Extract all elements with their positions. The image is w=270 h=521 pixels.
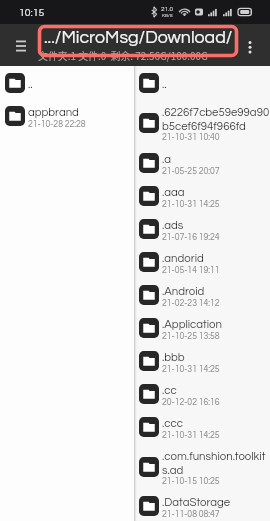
staticText: .cc [162,385,177,397]
staticText: 21-10-31 14:25 [162,200,220,209]
staticText: 21-10-31 14:25 [162,365,220,374]
button[interactable]: appbrand [0,99,133,132]
button[interactable]: .Android [137,278,270,311]
button[interactable]: .Application [137,311,270,344]
staticText: 21-10-31 10:40 [162,133,220,142]
staticText: appbrand [28,107,79,119]
button[interactable]: More options [240,35,260,55]
button[interactable]: .. [137,66,270,99]
staticText: 21-10-31 14:25 [162,431,220,440]
button[interactable]: .aaa [137,179,270,212]
staticText: .a [162,154,172,166]
staticText: .ccc [162,418,183,430]
staticText: 21-10-28 22:28 [28,120,86,129]
staticText: .com.funshion.toolkits.ad [162,451,270,476]
button[interactable]: Menu [11,35,31,55]
button[interactable]: .andorid [137,245,270,278]
staticText: 21-11-08 08:47 [162,510,220,519]
staticText: .Android [162,286,205,298]
staticText: 20-12-02 16:16 [162,398,220,407]
staticText: 21.0 [161,6,174,13]
button[interactable]: .DataStorage [137,490,270,521]
staticText: 21-10-15 10:25 [162,477,220,486]
staticText: .bbb [162,352,185,364]
staticText: 10:15 [19,7,45,18]
button[interactable]: .. [0,66,133,99]
staticText: 21-05-14 19:11 [162,266,220,275]
staticText: .. [162,79,167,91]
staticText: .6226f7cbe59e99a90b5cef6f94f966fd [162,107,270,132]
staticText: KB/S [162,13,173,18]
button[interactable]: .cc [137,377,270,410]
button[interactable]: .a [137,146,270,179]
staticText: 21-10-25 13:58 [162,332,220,341]
button[interactable]: .6226f7cbe59e99a90b5cef6f94f966fd [137,99,270,146]
staticText: .andorid [162,253,204,265]
staticText: 21-02-23 14:12 [162,299,220,308]
button[interactable]: .ccc [137,410,270,443]
staticText: .aaa [162,187,185,199]
button[interactable]: .ads [137,212,270,245]
staticText: 21-07-16 19:24 [162,233,220,242]
staticText: .DataStorage [162,497,231,509]
staticText: 文件夹:1 文件:0 剩余: 72.56G/100.00G [38,49,208,63]
staticText: .ads [162,220,184,232]
staticText: .Application [162,319,222,331]
staticText: .. [28,79,33,91]
button[interactable]: .bbb [137,344,270,377]
button[interactable]: .com.funshion.toolkits.ad [137,443,270,490]
staticText: .../MicroMsg/Download/ [44,28,233,46]
staticText: 21-05-25 20:07 [162,167,220,176]
